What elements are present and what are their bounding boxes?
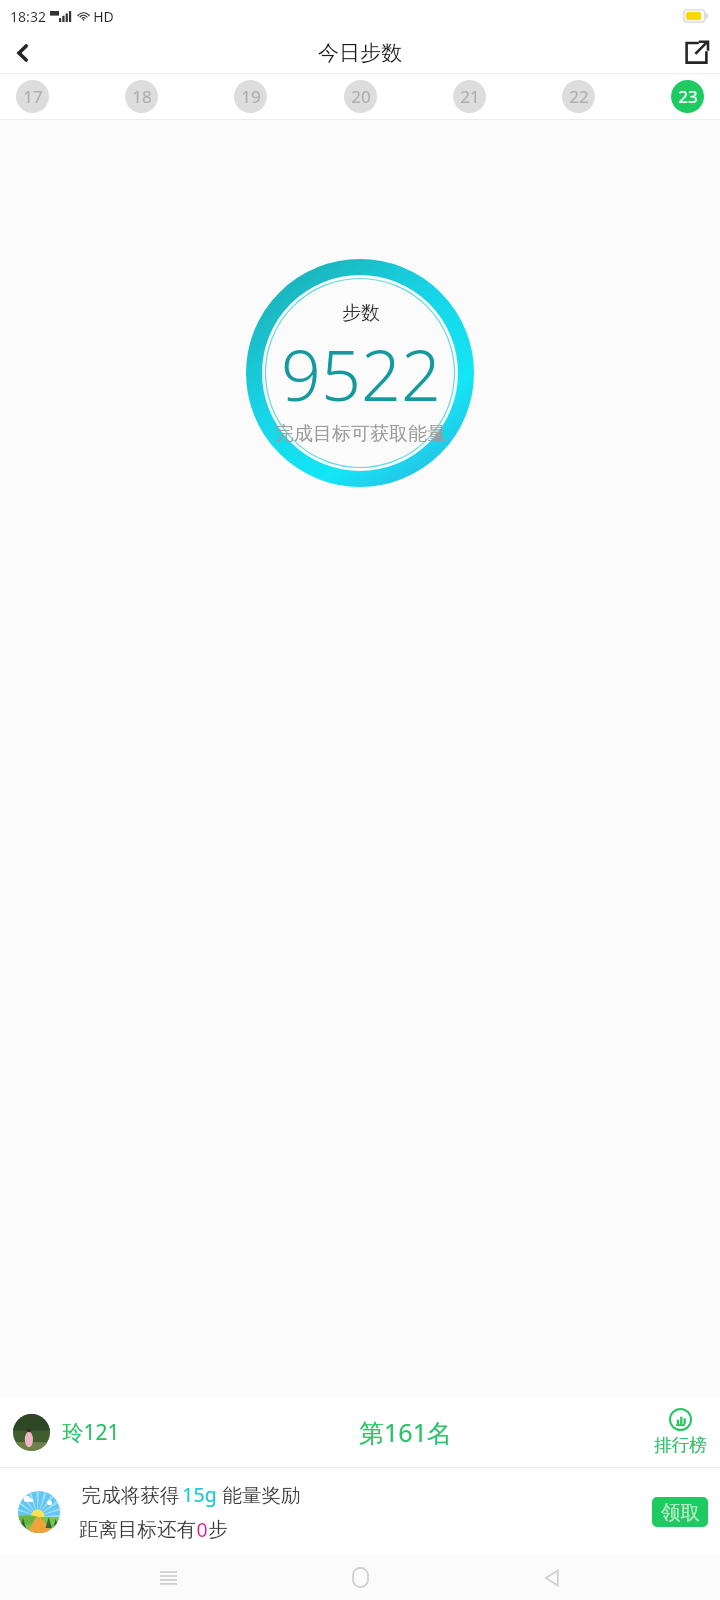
staticText: 完成将获得 [79, 1481, 182, 1508]
button[interactable]: 领取 [652, 1497, 708, 1527]
button[interactable]: 排行榜 [643, 1408, 717, 1456]
button[interactable]: 17 [16, 80, 49, 113]
staticText: 今日步数 [318, 40, 402, 66]
staticText: 完成目标可获取能量 [275, 422, 446, 446]
staticText: 17 [23, 85, 43, 108]
button[interactable]: Back [0, 32, 46, 73]
button[interactable]: 23 [671, 80, 704, 113]
staticText: HD [93, 7, 114, 26]
staticText: 排行榜 [654, 1434, 707, 1456]
button[interactable]: 18 [125, 80, 158, 113]
staticText: 23 [678, 85, 698, 108]
staticText: 领取 [661, 1500, 700, 1525]
staticText: 18:32 [10, 7, 46, 26]
button[interactable]: 21 [453, 80, 486, 113]
button[interactable]: 22 [562, 80, 595, 113]
staticText: 0 [196, 1516, 208, 1543]
staticText: 能量奖励 [217, 1481, 301, 1508]
staticText: 18 [132, 85, 152, 108]
staticText: 第161名 [359, 1415, 452, 1449]
staticText: 20 [351, 85, 371, 108]
staticText: 19 [241, 85, 261, 108]
staticText: 距离目标还有 [79, 1517, 196, 1542]
staticText: 玲121 [62, 1418, 120, 1447]
button[interactable]: Home [336, 1555, 384, 1600]
staticText: 步数 [342, 301, 380, 325]
button[interactable]: Share [672, 32, 720, 73]
staticText: 9522 [281, 326, 441, 421]
staticText: 步 [208, 1517, 228, 1542]
staticText: 22 [569, 85, 589, 108]
button[interactable]: 20 [344, 80, 377, 113]
button[interactable]: Recents [144, 1555, 192, 1600]
staticText: 21 [460, 85, 480, 108]
button[interactable]: Back [528, 1555, 576, 1600]
button[interactable]: 19 [234, 80, 267, 113]
button[interactable]: 玲121 [0, 1397, 720, 1467]
staticText: 15g [182, 1481, 217, 1508]
